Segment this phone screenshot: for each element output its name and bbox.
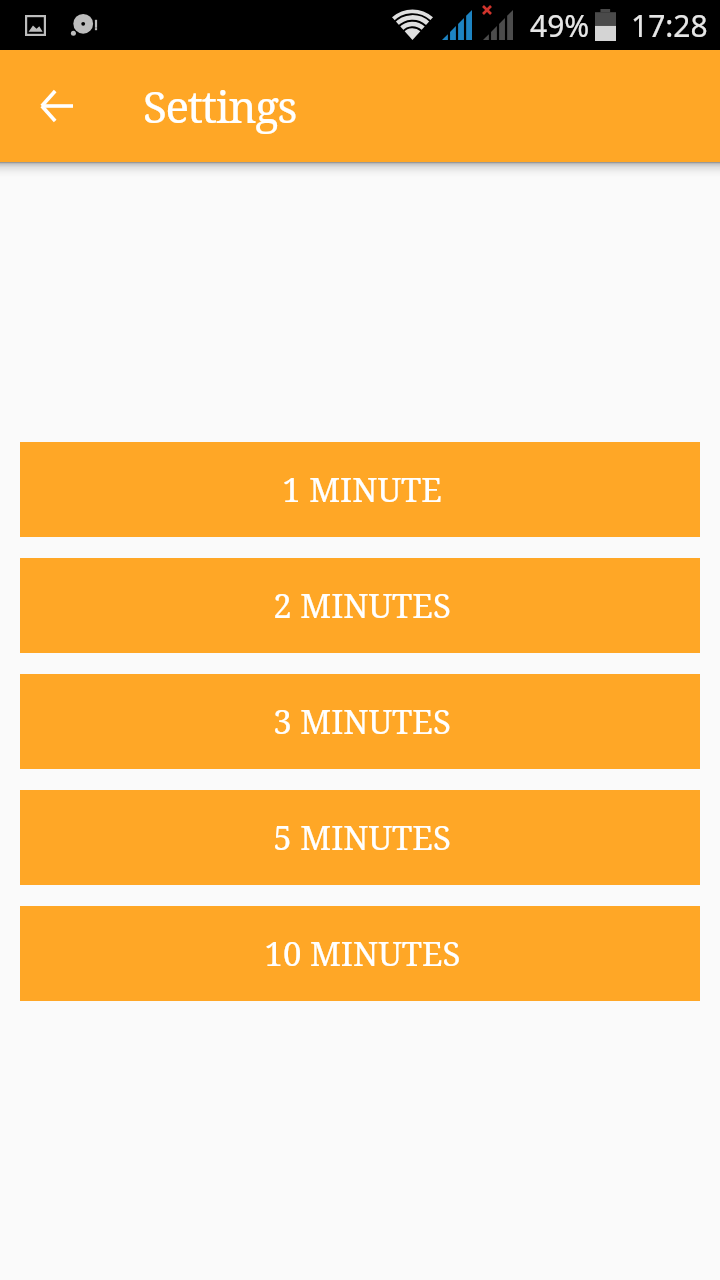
staticText: 49% — [530, 5, 590, 46]
staticText: 10 MINUTES — [264, 931, 461, 976]
button[interactable]: 5 MINUTES — [20, 790, 700, 885]
button[interactable]: 2 MINUTES — [20, 558, 700, 653]
button[interactable]: Back — [26, 76, 86, 136]
staticText: 17:28 — [631, 5, 708, 46]
button[interactable]: 10 MINUTES — [20, 906, 700, 1001]
staticText: 2 MINUTES — [273, 583, 451, 628]
staticText: 1 MINUTE — [282, 467, 442, 512]
button[interactable]: 1 MINUTE — [20, 442, 700, 537]
staticText: Settings — [143, 76, 296, 136]
button[interactable]: 3 MINUTES — [20, 674, 700, 769]
staticText: 3 MINUTES — [273, 699, 451, 744]
staticText: 5 MINUTES — [273, 815, 451, 860]
